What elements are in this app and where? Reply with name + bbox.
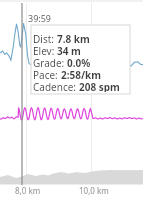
staticText: 10,0 km bbox=[79, 185, 109, 196]
staticText: 34 m bbox=[57, 44, 81, 56]
staticText: Pace: bbox=[33, 68, 61, 80]
staticText: Cadence: bbox=[33, 80, 79, 92]
staticText: 8,0 km bbox=[15, 185, 41, 196]
button[interactable]: Dist: bbox=[31, 25, 130, 94]
staticText: 2:58/km bbox=[61, 68, 102, 80]
staticText: Elev: bbox=[33, 44, 57, 56]
staticText: 0.0% bbox=[67, 56, 91, 68]
staticText: Grade: bbox=[33, 56, 67, 68]
staticText: 208 spm bbox=[79, 80, 120, 92]
staticText: 7.8 km bbox=[57, 32, 90, 44]
staticText: Dist: bbox=[33, 32, 57, 44]
staticText: 39:59 bbox=[28, 12, 52, 24]
